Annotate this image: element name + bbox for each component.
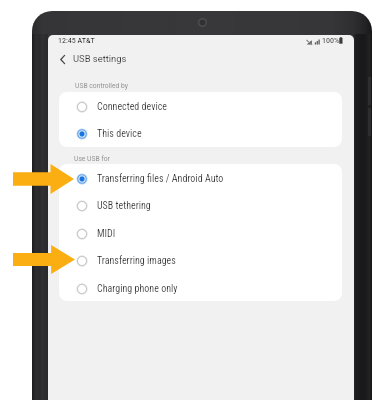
staticText: Transferring images — [97, 255, 176, 267]
button[interactable]: Transferring images — [59, 247, 342, 274]
staticText: Transferring files / Android Auto — [97, 173, 224, 185]
staticText: This device — [97, 128, 142, 140]
staticText: 100% — [322, 37, 340, 45]
staticText: Connected device — [97, 101, 168, 113]
button[interactable]: MIDI — [59, 220, 342, 247]
staticText: 12:45 AT&T — [58, 37, 95, 45]
button[interactable]: Connected device — [59, 93, 342, 120]
button[interactable]: Transferring files / Android Auto — [59, 165, 342, 192]
staticText: Use USB for — [74, 155, 110, 163]
staticText: USB settings — [73, 53, 127, 64]
staticText: MIDI — [97, 228, 116, 240]
other: Pointer arrow — [13, 164, 74, 194]
button[interactable]: This device — [59, 120, 342, 147]
button[interactable]: Back — [52, 49, 72, 69]
button[interactable]: USB tethering — [59, 192, 342, 219]
staticText: USB tethering — [97, 200, 151, 212]
button[interactable]: Charging phone only — [59, 275, 342, 302]
other: Pointer arrow — [13, 245, 75, 274]
staticText: Charging phone only — [97, 283, 178, 295]
staticText: USB controlled by — [75, 82, 128, 90]
